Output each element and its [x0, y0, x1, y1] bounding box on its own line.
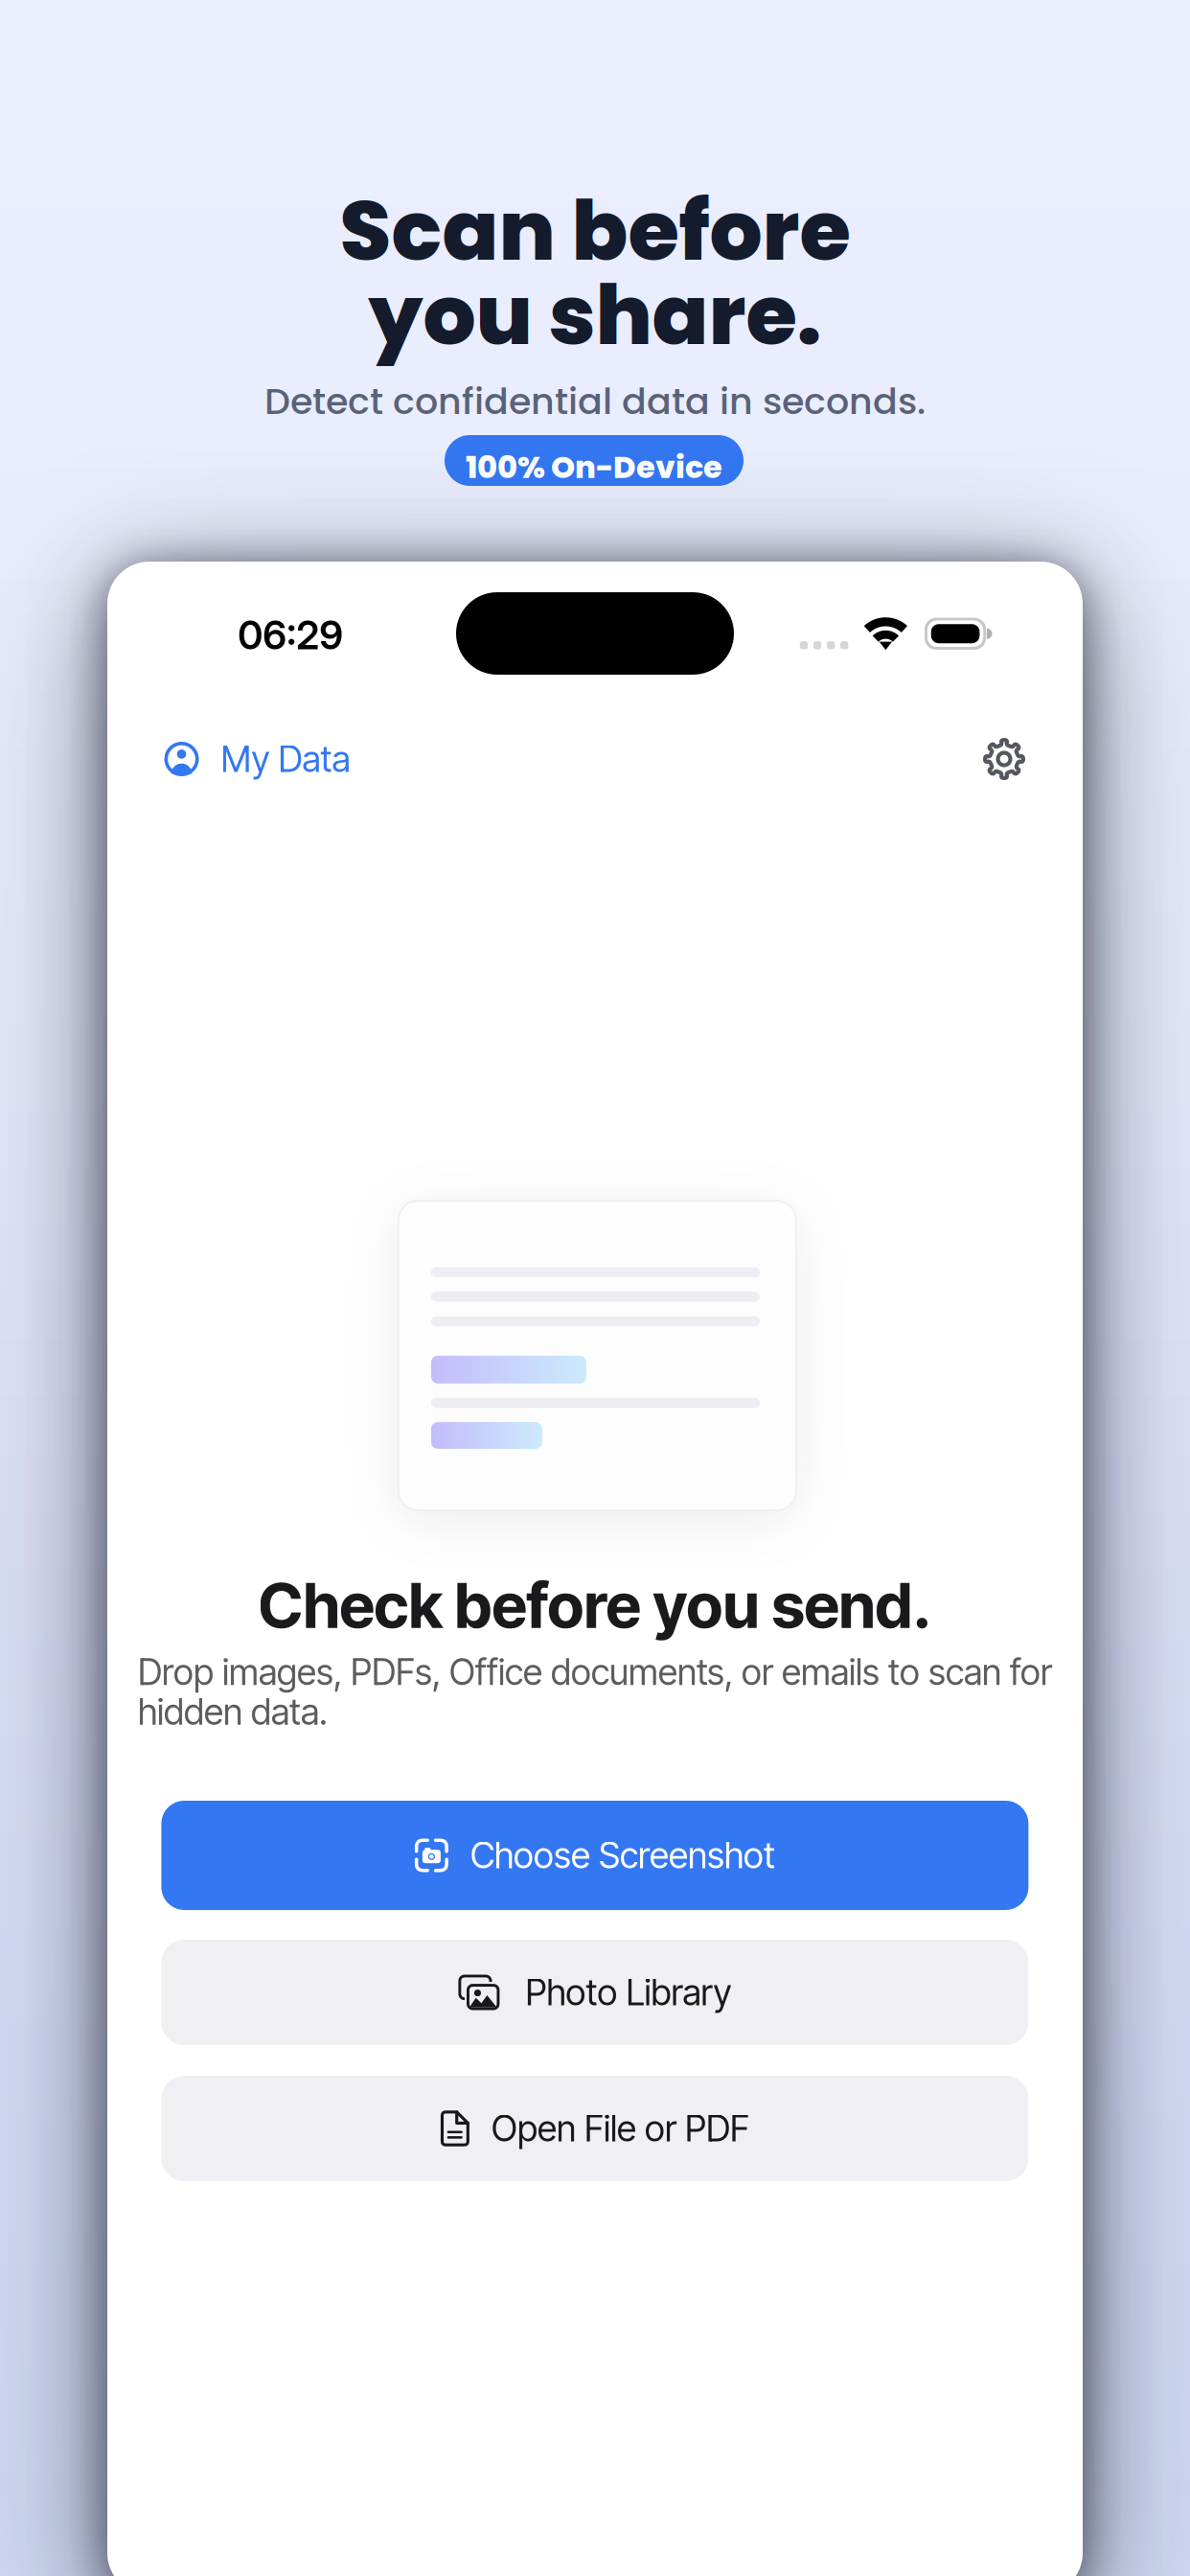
- button[interactable]: Photo Library: [161, 1940, 1028, 2045]
- button[interactable]: Settings: [970, 724, 1039, 793]
- staticText: Check before you send.: [258, 1568, 932, 1631]
- staticText: Detect confidential data in seconds.: [264, 376, 926, 427]
- staticText: Choose Screenshot: [470, 1834, 775, 1877]
- staticText: Scan before: [340, 172, 850, 264]
- staticText: you share.: [368, 257, 822, 362]
- staticText: 100% On-Device: [466, 446, 722, 489]
- button[interactable]: My Data: [164, 732, 413, 786]
- staticText: My Data: [221, 737, 350, 781]
- button[interactable]: Choose Screenshot: [161, 1801, 1028, 1910]
- staticText: hidden data.: [138, 1690, 328, 1730]
- staticText: 06:29: [238, 611, 343, 652]
- staticText: Open File or PDF: [491, 2107, 749, 2150]
- button[interactable]: Open File or PDF: [161, 2076, 1028, 2181]
- staticText: Drop images, PDFs, Office documents, or …: [138, 1650, 1052, 1690]
- staticText: Photo Library: [525, 1971, 731, 2014]
